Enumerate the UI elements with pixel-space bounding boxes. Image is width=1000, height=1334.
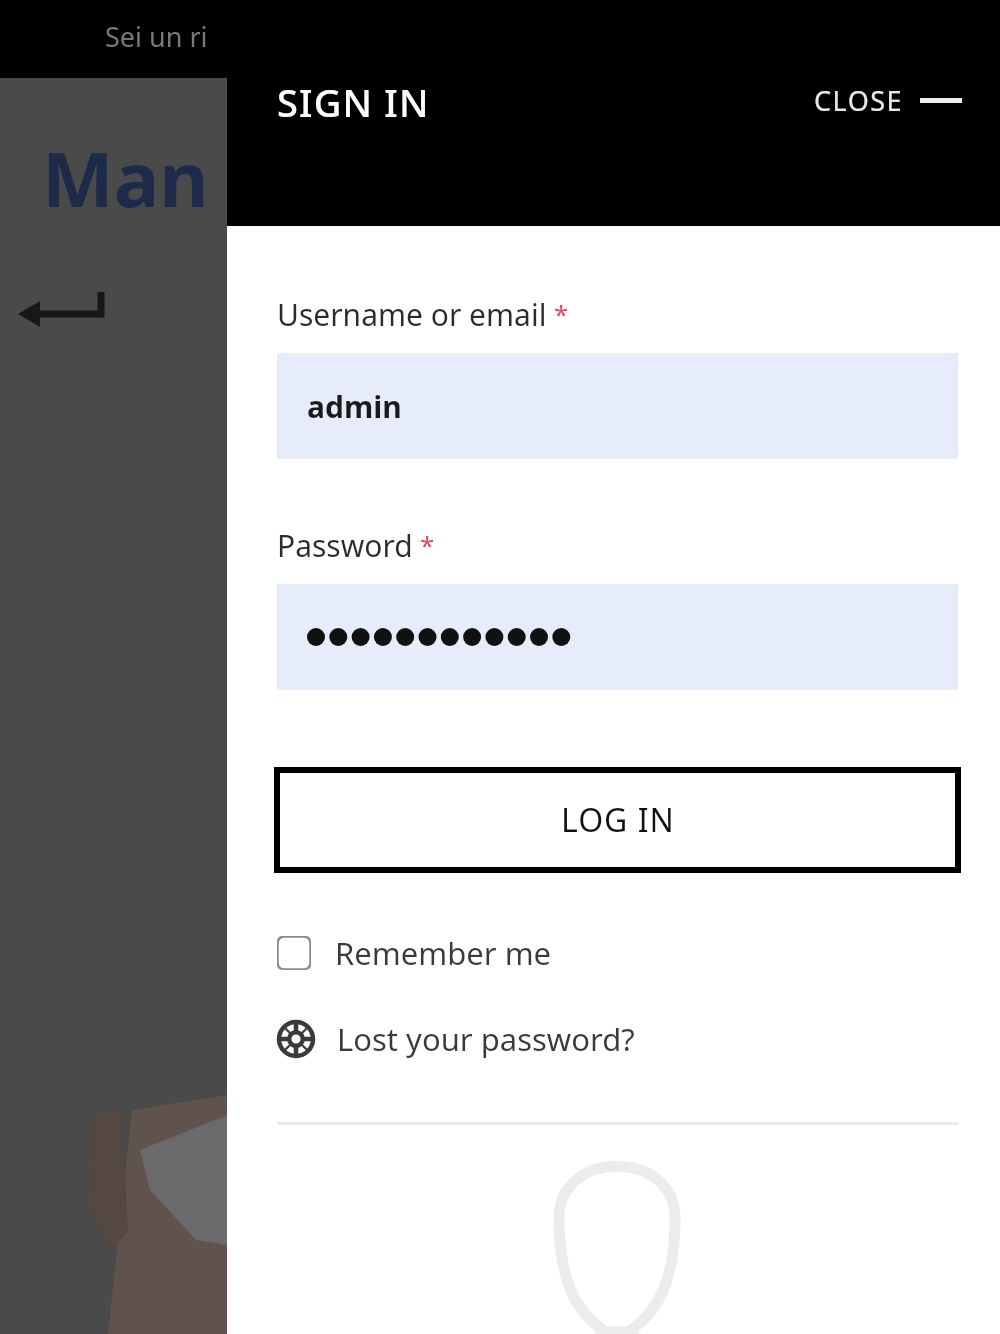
staticText: CLOSE [814,82,904,119]
staticText: Remember me [335,932,552,974]
button[interactable]: Remember me [277,932,552,974]
staticText: Man [42,126,209,230]
staticText: Username or email [277,294,547,335]
button[interactable]: LOG IN [277,770,958,870]
other: Back [14,292,114,338]
button[interactable]: admin [277,353,958,459]
button[interactable]: Lost your password? [277,1018,635,1060]
staticText: admin [307,386,402,427]
button[interactable] [277,584,958,690]
staticText: LOG IN [561,798,675,842]
staticText: SIGN IN [277,76,430,128]
staticText: Lost your password? [337,1018,635,1060]
staticText: Sei un ri [105,18,208,55]
staticText: * [420,527,435,562]
staticText: * [554,296,569,331]
staticText: Password [277,525,413,566]
button[interactable]: CLOSE [814,82,962,119]
